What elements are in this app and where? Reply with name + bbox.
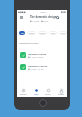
staticText: ● 12 Jun · 09:40 xyxy=(28,56,44,59)
button[interactable]: Cars xyxy=(49,31,57,35)
staticText: ●●●● xyxy=(18,11,26,14)
button[interactable]: Menu xyxy=(19,15,24,20)
button[interactable]: Flights xyxy=(38,31,47,35)
staticText: UPCOMING TRIPS xyxy=(19,42,39,45)
staticText: All xyxy=(21,32,24,35)
button[interactable]: Explore xyxy=(17,87,29,97)
staticText: Saved xyxy=(45,93,51,96)
staticText: Cars xyxy=(51,32,56,35)
staticText: Stay xyxy=(61,32,66,35)
button[interactable]: Stay xyxy=(59,31,67,35)
staticText: HOLIDAY TOKYO xyxy=(28,64,48,67)
staticText: ▮▮▮▮ xyxy=(61,11,66,14)
staticText: The domestic design xyxy=(30,15,57,19)
staticText: ● 14 Jun · 11:20 xyxy=(28,68,44,71)
button[interactable]: Trips xyxy=(30,87,42,97)
staticText: Flights xyxy=(39,32,46,35)
button[interactable]: HOLIDAY LOND xyxy=(17,51,67,59)
button[interactable]: HOLIDAY TOKYO xyxy=(17,63,67,71)
staticText: ● Econ xyxy=(41,20,49,23)
staticText: 12:30 xyxy=(40,11,46,14)
staticText: HOLIDAY LOND xyxy=(28,52,47,55)
staticText: Profile xyxy=(58,93,64,96)
button[interactable]: Saved xyxy=(42,87,54,97)
staticText: Trips xyxy=(34,93,39,96)
staticText: Hotel xyxy=(29,32,35,35)
button[interactable]: Filter xyxy=(55,15,60,20)
staticText: ● 2 Adult xyxy=(30,20,40,23)
button[interactable]: Profile xyxy=(55,87,67,97)
button[interactable]: Hotel xyxy=(27,31,36,35)
staticText: Explore xyxy=(20,93,27,96)
button[interactable]: All xyxy=(19,31,25,35)
